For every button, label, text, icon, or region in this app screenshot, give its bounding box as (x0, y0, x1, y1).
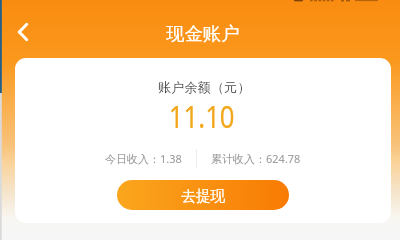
staticText: 累计收入：624.78 (211, 151, 301, 166)
button[interactable]: Back (5, 14, 41, 50)
staticText: 现金账户 (166, 22, 240, 45)
staticText: 去提现 (181, 187, 226, 206)
staticText: 11.10 (169, 95, 235, 137)
staticText: 今日收入：1.38 (105, 151, 182, 166)
staticText: 账户余额（元） (158, 79, 251, 96)
button[interactable]: 去提现 (117, 180, 289, 210)
